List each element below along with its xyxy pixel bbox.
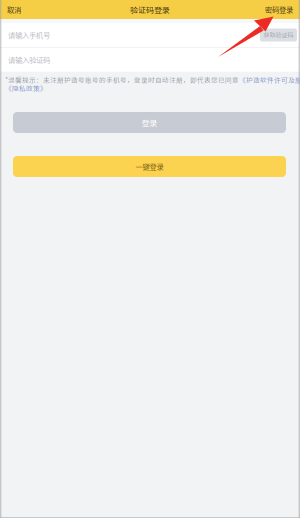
staticText: 《隐私政策》 [5, 83, 47, 93]
staticText: 登录 [141, 117, 157, 128]
button[interactable]: 取消 [0, 0, 28, 19]
staticText: 密码登录 [265, 4, 293, 15]
button[interactable]: 请输入手机号 [0, 23, 260, 47]
staticText: 请输入验证码 [8, 54, 50, 65]
button[interactable]: 密码登录 [258, 0, 300, 19]
staticText: 取消 [7, 4, 21, 15]
staticText: 验证码登录 [130, 4, 170, 15]
staticText: 《护造软件许可及服务协议》 [239, 75, 300, 85]
button[interactable]: 一键登录 [13, 156, 286, 177]
button[interactable]: 请输入验证码 [0, 48, 300, 72]
staticText: 获取验证码 [263, 31, 293, 39]
staticText: *温馨提示：未注册护造号账号的手机号，登录时自动注册，即代表您已同意 [5, 75, 239, 85]
button[interactable]: 获取验证码 [260, 28, 300, 41]
staticText: 请输入手机号 [8, 30, 50, 40]
button[interactable]: 登录 [13, 112, 286, 133]
staticText: 一键登录 [135, 161, 163, 172]
